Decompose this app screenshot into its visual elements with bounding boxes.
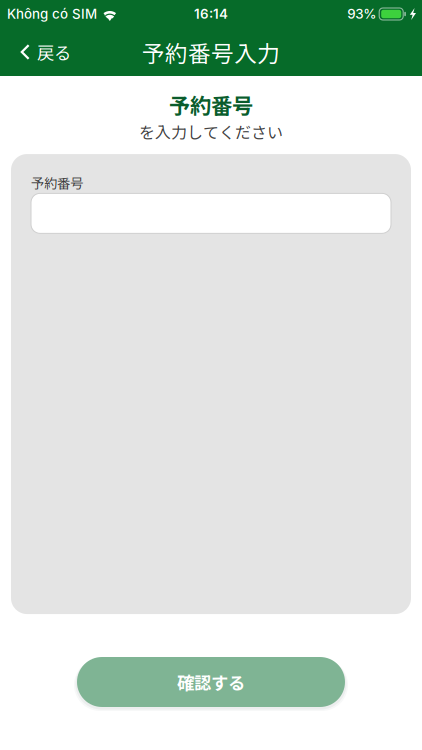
staticText: 16:14 — [194, 6, 228, 22]
staticText: 予約番号入力 — [142, 36, 280, 68]
staticText: 予約番号 — [169, 89, 253, 120]
staticText: を入力してください — [139, 120, 283, 143]
staticText: Không có SIM — [7, 6, 97, 22]
staticText: 予約番号 — [31, 173, 83, 192]
staticText: 93% — [347, 6, 376, 22]
button[interactable]: 戻る — [0, 30, 81, 74]
staticText: 確認する — [177, 669, 245, 695]
staticText: 戻る — [37, 39, 71, 65]
button[interactable]: 確認する — [72, 653, 350, 711]
